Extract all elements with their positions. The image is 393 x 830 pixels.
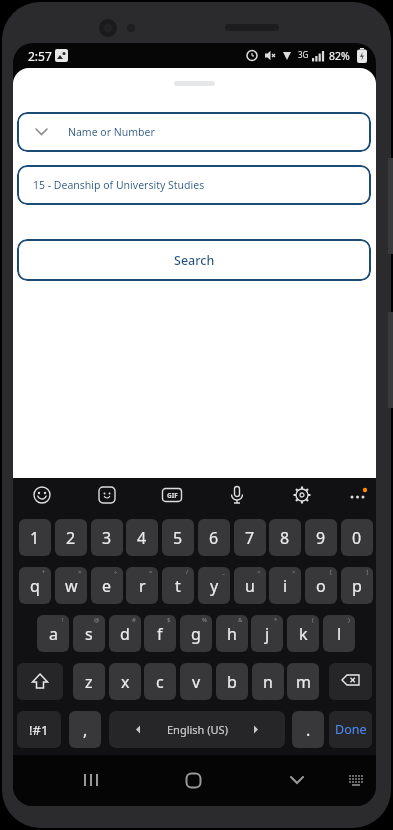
button[interactable] bbox=[75, 764, 107, 796]
staticText: 3G bbox=[298, 49, 309, 60]
button[interactable] bbox=[28, 481, 56, 509]
button[interactable]: 2 bbox=[55, 519, 87, 556]
button[interactable]: !#1 bbox=[17, 711, 61, 748]
button[interactable]: Search bbox=[17, 239, 371, 281]
button[interactable]: f bbox=[144, 615, 176, 652]
button[interactable]: h bbox=[216, 615, 248, 652]
button[interactable]: Done bbox=[329, 711, 372, 748]
staticText: 2 bbox=[66, 527, 76, 549]
button[interactable]: GIF bbox=[158, 481, 186, 509]
staticText: > bbox=[292, 568, 296, 576]
staticText: 1 bbox=[30, 527, 40, 549]
button[interactable] bbox=[281, 764, 313, 796]
button[interactable]: m bbox=[287, 663, 319, 700]
button[interactable]: d bbox=[109, 615, 141, 652]
button[interactable] bbox=[344, 481, 372, 509]
button[interactable]: n bbox=[252, 663, 284, 700]
button[interactable]: r bbox=[126, 567, 158, 604]
button[interactable] bbox=[93, 481, 121, 509]
staticText: o bbox=[316, 575, 326, 597]
button[interactable]: b bbox=[216, 663, 248, 700]
staticText: a bbox=[49, 623, 58, 645]
button[interactable]: English (US) bbox=[109, 711, 285, 748]
button[interactable]: 6 bbox=[198, 519, 230, 556]
staticText: 6 bbox=[209, 527, 219, 549]
staticText: t bbox=[175, 575, 181, 597]
button[interactable]: x bbox=[109, 663, 141, 700]
staticText: , bbox=[83, 719, 88, 741]
button[interactable]: y bbox=[198, 567, 230, 604]
button[interactable]: Name or Number bbox=[17, 112, 371, 152]
button[interactable]: w bbox=[55, 567, 87, 604]
button[interactable]: 9 bbox=[305, 519, 337, 556]
staticText: n bbox=[263, 671, 273, 693]
button[interactable]: 4 bbox=[126, 519, 158, 556]
button[interactable] bbox=[223, 481, 251, 509]
staticText: u bbox=[245, 575, 255, 597]
staticText: 5 bbox=[173, 527, 183, 549]
staticText: 9 bbox=[316, 527, 326, 549]
button[interactable]: a bbox=[37, 615, 69, 652]
staticText: x bbox=[121, 671, 130, 693]
button[interactable]: s bbox=[73, 615, 105, 652]
button[interactable]: g bbox=[180, 615, 212, 652]
staticText: y bbox=[210, 575, 219, 597]
staticText: j bbox=[265, 623, 270, 645]
staticText: $ bbox=[167, 616, 171, 624]
button[interactable] bbox=[288, 481, 316, 509]
staticText: 15 - Deanship of University Studies bbox=[33, 178, 205, 192]
staticText: Search bbox=[174, 252, 215, 269]
staticText: 2:57 bbox=[28, 48, 52, 64]
button[interactable]: 5 bbox=[162, 519, 194, 556]
button[interactable]: q bbox=[19, 567, 51, 604]
staticText: 4 bbox=[137, 527, 147, 549]
button[interactable] bbox=[329, 663, 372, 700]
button[interactable]: 15 - Deanship of University Studies bbox=[17, 165, 371, 205]
button[interactable]: 8 bbox=[269, 519, 301, 556]
button[interactable]: u bbox=[234, 567, 266, 604]
button[interactable]: i bbox=[269, 567, 301, 604]
staticText: ] bbox=[366, 568, 368, 576]
staticText: GIF bbox=[167, 491, 178, 500]
button[interactable]: t bbox=[162, 567, 194, 604]
staticText: s bbox=[85, 623, 93, 645]
staticText: / bbox=[186, 568, 189, 576]
button[interactable]: , bbox=[69, 711, 101, 748]
staticText: v bbox=[192, 671, 201, 693]
button[interactable]: z bbox=[73, 663, 105, 700]
button[interactable]: 7 bbox=[234, 519, 266, 556]
button[interactable]: . bbox=[292, 711, 324, 748]
button[interactable]: o bbox=[305, 567, 337, 604]
button[interactable]: p bbox=[341, 567, 373, 604]
button[interactable]: l bbox=[323, 615, 355, 652]
staticText: g bbox=[191, 623, 201, 645]
staticText: % bbox=[202, 616, 207, 624]
button[interactable]: j bbox=[251, 615, 283, 652]
button[interactable]: c bbox=[144, 663, 176, 700]
staticText: [ bbox=[330, 568, 332, 576]
button[interactable]: e bbox=[91, 567, 123, 604]
staticText: w bbox=[65, 575, 78, 597]
button[interactable]: 0 bbox=[341, 519, 373, 556]
button[interactable] bbox=[17, 663, 63, 700]
staticText: * bbox=[274, 616, 278, 624]
staticText: q bbox=[30, 575, 40, 597]
staticText: ÷ bbox=[114, 568, 118, 576]
staticText: f bbox=[157, 623, 163, 645]
staticText: d bbox=[120, 623, 130, 645]
button[interactable]: k bbox=[287, 615, 319, 652]
staticText: e bbox=[102, 575, 112, 597]
staticText: k bbox=[299, 623, 308, 645]
button[interactable]: 3 bbox=[91, 519, 123, 556]
staticText: & bbox=[238, 616, 243, 624]
staticText: c bbox=[156, 671, 164, 693]
button[interactable]: v bbox=[180, 663, 212, 700]
staticText: p bbox=[352, 575, 362, 597]
staticText: b bbox=[227, 671, 237, 693]
staticText: + bbox=[42, 568, 46, 576]
button[interactable]: 1 bbox=[19, 519, 51, 556]
staticText: < bbox=[257, 568, 261, 576]
staticText: i bbox=[283, 575, 288, 597]
button[interactable] bbox=[177, 764, 209, 796]
button[interactable] bbox=[343, 767, 369, 793]
